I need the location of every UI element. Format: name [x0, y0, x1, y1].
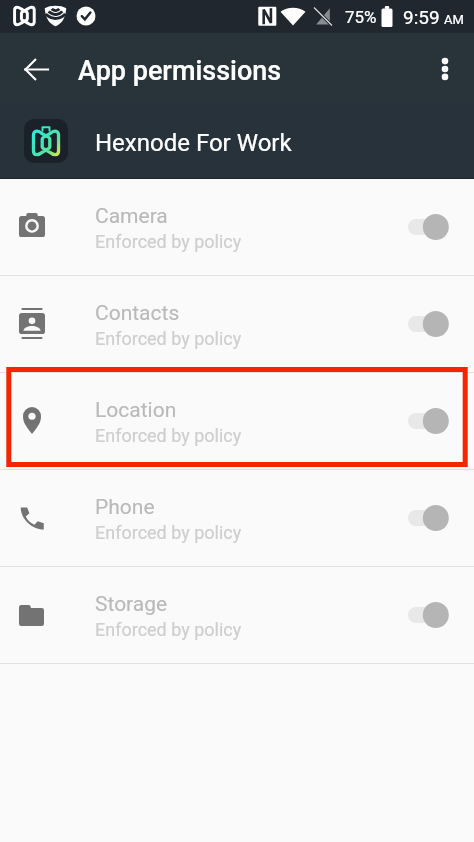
staticText: 9:59	[403, 6, 440, 28]
staticText: AM	[444, 12, 464, 27]
button[interactable]: Camera	[0, 179, 474, 275]
staticText: Camera	[95, 204, 168, 229]
button[interactable]: Location	[0, 373, 474, 469]
button[interactable]: Contacts permission toggle	[401, 299, 468, 349]
button[interactable]: Phone	[0, 470, 474, 566]
staticText: Enforced by policy	[95, 328, 242, 349]
staticText: Enforced by policy	[95, 425, 242, 446]
staticText: Enforced by policy	[95, 522, 242, 543]
staticText: Hexnode For Work	[95, 129, 292, 157]
button[interactable]: Camera permission toggle	[401, 202, 468, 252]
staticText: App permissions	[78, 55, 282, 87]
button[interactable]: Phone permission toggle	[401, 493, 468, 543]
staticText: Contacts	[95, 301, 180, 326]
button[interactable]: Location permission toggle	[401, 396, 468, 446]
staticText: Phone	[95, 495, 155, 520]
button[interactable]: Contacts	[0, 276, 474, 372]
button[interactable]: More options	[421, 45, 469, 93]
button[interactable]: Storage permission toggle	[401, 590, 468, 640]
staticText: Location	[95, 398, 177, 423]
staticText: Enforced by policy	[95, 231, 242, 252]
button[interactable]: Navigate up	[12, 45, 60, 93]
staticText: 75%	[345, 7, 377, 27]
staticText: Storage	[95, 592, 168, 617]
button[interactable]: Storage	[0, 567, 474, 663]
staticText: Enforced by policy	[95, 619, 242, 640]
